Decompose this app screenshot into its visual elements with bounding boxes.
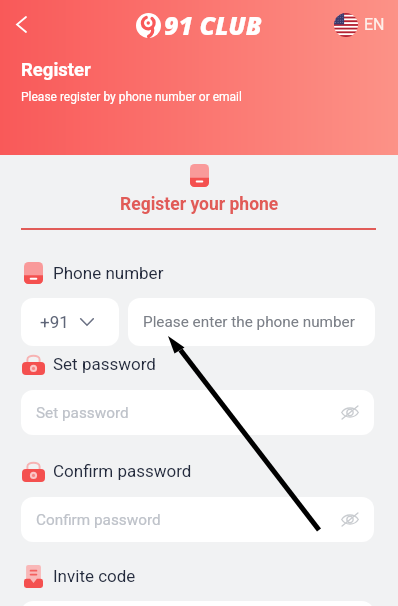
button[interactable]: Confirm password bbox=[22, 459, 192, 483]
staticText: Phone number bbox=[53, 263, 164, 283]
staticText: Set password bbox=[53, 354, 156, 374]
staticText: 91 CLUB bbox=[164, 8, 262, 42]
button[interactable]: Please enter the phone number bbox=[128, 298, 375, 346]
staticText: Register your phone bbox=[120, 194, 279, 215]
staticText: Set password bbox=[36, 404, 129, 422]
staticText: +91 bbox=[40, 312, 69, 332]
button[interactable]: EN bbox=[334, 13, 385, 37]
staticText: Register bbox=[21, 59, 91, 81]
button[interactable]: Invite code bbox=[22, 564, 136, 588]
button[interactable]: Confirm password bbox=[21, 497, 374, 542]
staticText: Please register by phone number or email bbox=[21, 90, 242, 104]
button[interactable]: Set password bbox=[21, 390, 374, 435]
button[interactable]: Phone number bbox=[22, 261, 164, 285]
staticText: Please enter the phone number bbox=[143, 313, 355, 331]
staticText: Confirm password bbox=[53, 461, 192, 481]
button[interactable]: Set password bbox=[22, 352, 156, 376]
staticText: EN bbox=[364, 15, 385, 34]
staticText: Invite code bbox=[53, 566, 136, 586]
button[interactable]: Show password bbox=[339, 509, 360, 530]
button[interactable]: +91 bbox=[21, 298, 119, 346]
staticText: Confirm password bbox=[36, 511, 161, 529]
button[interactable]: Back bbox=[5, 8, 38, 41]
button[interactable]: Show password bbox=[339, 402, 360, 423]
